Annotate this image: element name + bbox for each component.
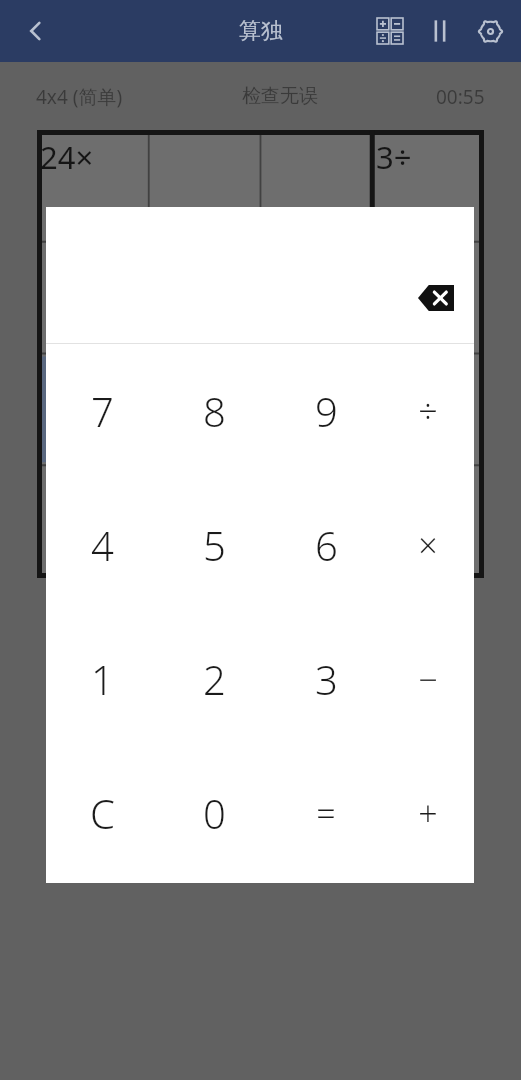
button[interactable]: 3 <box>270 612 382 746</box>
button[interactable]: ÷ <box>382 344 474 478</box>
button[interactable]: + <box>382 746 474 880</box>
button[interactable]: × <box>382 478 474 612</box>
button[interactable]: = <box>270 746 382 880</box>
staticText: 1 <box>91 652 114 706</box>
button[interactable]: 4 <box>46 478 158 612</box>
staticText: ÷ <box>418 388 438 434</box>
staticText: 检查无误 <box>242 84 318 108</box>
staticText: 24× <box>40 136 94 178</box>
button[interactable]: Pause <box>415 6 465 56</box>
staticText: + <box>418 790 438 836</box>
button[interactable]: C <box>46 746 158 880</box>
staticText: 00:55 <box>436 84 485 110</box>
staticText: 2 <box>203 652 226 706</box>
staticText: 算独 <box>239 17 283 45</box>
staticText: C <box>90 786 115 840</box>
staticText: 9 <box>315 384 338 438</box>
button[interactable]: 5 <box>158 478 270 612</box>
staticText: 6 <box>315 518 338 572</box>
staticText: 4 <box>91 518 114 572</box>
staticText: 3 <box>315 652 338 706</box>
button[interactable]: 6 <box>270 478 382 612</box>
button[interactable]: 7 <box>46 344 158 478</box>
button[interactable]: 0 <box>158 746 270 880</box>
button[interactable]: 9 <box>270 344 382 478</box>
staticText: 3÷ <box>376 136 412 178</box>
button[interactable]: Back <box>10 5 62 57</box>
staticText: − <box>418 656 438 702</box>
staticText: 8 <box>203 384 226 438</box>
staticText: 0 <box>203 786 226 840</box>
staticText: 4x4 (简单) <box>36 84 123 110</box>
button[interactable]: Backspace <box>408 270 464 326</box>
button[interactable]: 2 <box>158 612 270 746</box>
staticText: 7 <box>91 384 114 438</box>
button[interactable]: 1 <box>46 612 158 746</box>
staticText: 5 <box>203 518 226 572</box>
button[interactable]: − <box>382 612 474 746</box>
button[interactable]: Operators <box>365 6 415 56</box>
button[interactable]: 8 <box>158 344 270 478</box>
staticText: × <box>418 522 438 568</box>
button[interactable]: Settings <box>465 6 515 56</box>
staticText: = <box>316 790 336 836</box>
